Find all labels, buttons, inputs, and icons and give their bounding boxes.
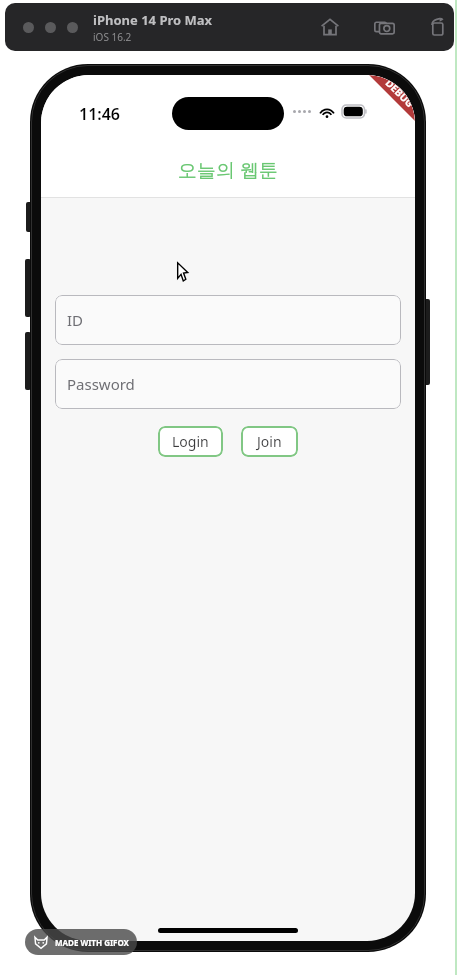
button[interactable]: Join	[241, 426, 298, 457]
button[interactable]: Login	[158, 426, 223, 457]
staticText: 11:46	[79, 103, 121, 125]
button[interactable]: Home	[317, 14, 343, 40]
button[interactable]	[23, 22, 34, 33]
staticText: Login	[172, 432, 209, 451]
staticText: 오늘의 웹툰	[178, 157, 278, 183]
staticText: Password	[67, 374, 135, 394]
button[interactable]: ID	[55, 295, 401, 345]
button[interactable]: Password	[55, 359, 401, 409]
button[interactable]: Screenshot	[371, 14, 397, 40]
staticText: iPhone 14 Pro Max	[93, 11, 213, 29]
button[interactable]	[67, 22, 78, 33]
button[interactable]: Rotate	[425, 14, 451, 40]
staticText: MADE WITH GIFOX	[55, 937, 129, 948]
button[interactable]	[45, 22, 56, 33]
staticText: DEBUG	[383, 76, 415, 110]
staticText: ID	[67, 310, 84, 330]
staticText: Join	[257, 432, 282, 451]
staticText: iOS 16.2	[93, 30, 132, 44]
